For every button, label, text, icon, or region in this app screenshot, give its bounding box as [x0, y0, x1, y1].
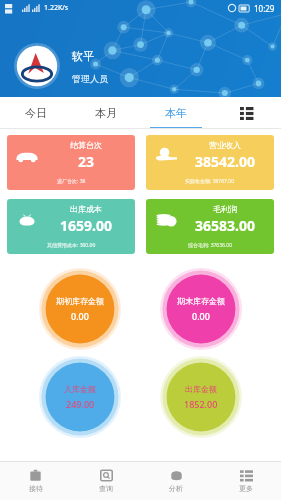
button[interactable]: 接待 — [0, 462, 71, 500]
staticText: 36583.00 — [195, 216, 255, 235]
button[interactable]: 出库成本 — [7, 199, 135, 254]
button[interactable]: 营业收入 — [146, 135, 274, 190]
staticText: 出库金额 — [185, 384, 217, 394]
staticText: 今日 — [25, 106, 47, 120]
staticText: 23 — [78, 152, 95, 171]
staticText: 0.00 — [71, 310, 89, 322]
button[interactable]: 今日 — [0, 97, 71, 129]
button[interactable]: 结算台次 — [7, 135, 135, 190]
button[interactable]: 毛利润 — [146, 199, 274, 254]
staticText: 管理人员 — [72, 73, 108, 84]
staticText: 分析 — [169, 484, 183, 493]
staticText: 查询 — [99, 484, 113, 493]
staticText: 249.00 — [66, 398, 95, 410]
staticText: 结算台次 — [70, 140, 102, 150]
staticText: 营业收入 — [209, 140, 241, 150]
staticText: 进厂台次: 38 — [57, 178, 86, 185]
button[interactable]: 本月 — [71, 97, 141, 129]
staticText: 1659.00 — [60, 216, 112, 235]
button[interactable]: 更多 — [211, 462, 281, 500]
button[interactable]: 期末库存金额 — [160, 268, 242, 350]
button[interactable]: 软平 — [14, 43, 108, 89]
staticText: 期末库存金额 — [177, 296, 225, 306]
button[interactable]: 分析 — [141, 462, 211, 500]
staticText: 本月 — [95, 106, 117, 120]
staticText: 综合毛利: 37636.00 — [188, 242, 233, 249]
button[interactable]: 入库金额 — [39, 356, 121, 438]
staticText: 0.00 — [192, 310, 210, 322]
staticText: 实际收金额: 38767.00 — [185, 178, 235, 185]
staticText: 入库金额 — [64, 384, 96, 394]
staticText: 期初库存金额 — [56, 296, 104, 306]
button[interactable]: 本年 — [141, 97, 211, 129]
button[interactable]: 查询 — [71, 462, 141, 500]
staticText: 接待 — [29, 484, 43, 493]
button[interactable]: 列表 — [211, 97, 281, 129]
staticText: 38542.00 — [195, 152, 255, 171]
staticText: 毛利润 — [213, 204, 237, 214]
staticText: 软平 — [72, 49, 94, 63]
staticText: 其他费用成本: 300.00 — [47, 242, 96, 249]
staticText: 1.22K/s — [44, 3, 69, 13]
staticText: 更多 — [239, 484, 253, 493]
button[interactable]: 期初库存金额 — [39, 268, 121, 350]
staticText: 本年 — [165, 106, 187, 120]
staticText: 出库成本 — [70, 204, 102, 214]
staticText: 10:29 — [254, 3, 275, 14]
button[interactable]: 出库金额 — [160, 356, 242, 438]
staticText: 1852.00 — [184, 398, 218, 410]
